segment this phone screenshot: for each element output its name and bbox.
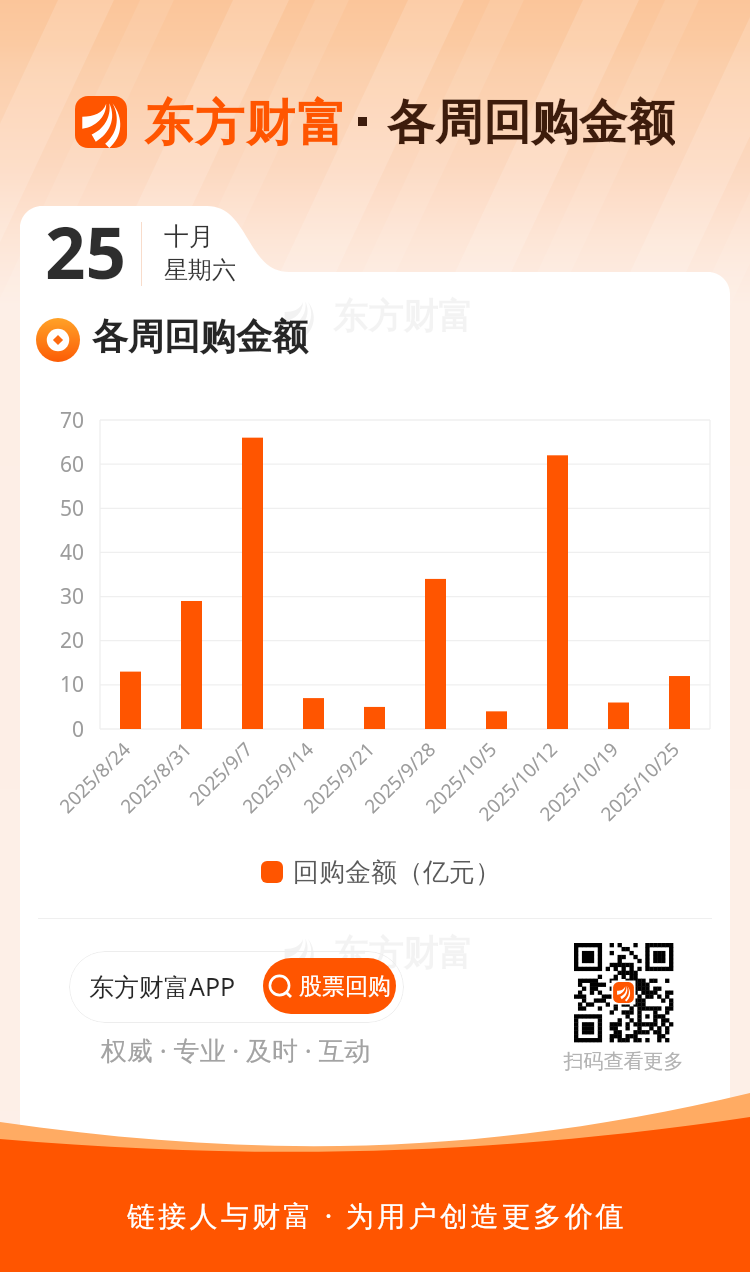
staticText: 扫码查看更多	[554, 1049, 693, 1074]
staticText: 2025/9/14	[237, 736, 319, 819]
staticText: 50	[36, 494, 84, 523]
staticText: 各周回购金额	[387, 93, 675, 147]
staticText: 股票回购	[299, 972, 391, 1001]
staticText: 0	[36, 715, 84, 744]
staticText: 十月	[164, 221, 214, 252]
staticText: 2025/9/7	[183, 736, 258, 811]
staticText: 链接人与财富 · 为用户创造更多价值	[2, 1196, 750, 1234]
staticText: 权威 · 专业 · 及时 · 互动	[101, 1032, 371, 1068]
staticText: 2025/9/21	[298, 736, 380, 819]
button[interactable]: QR code, scan for more	[574, 943, 673, 1042]
staticText: 2025/8/24	[54, 736, 136, 819]
staticText: 2025/8/31	[115, 736, 197, 819]
staticText: 2025/9/28	[359, 736, 441, 819]
staticText: 40	[36, 538, 84, 567]
staticText: 70	[36, 406, 84, 435]
staticText: 回购金额（亿元）	[293, 856, 501, 889]
staticText: 2025/10/25	[595, 736, 685, 826]
staticText: 60	[36, 450, 84, 479]
staticText: 东方财富	[143, 93, 347, 147]
staticText: 各周回购金额	[92, 314, 308, 359]
staticText: 25	[45, 203, 127, 300]
staticText: 东方财富	[333, 931, 473, 975]
staticText: 东方财富APP	[89, 969, 236, 1003]
staticText: 2025/10/5	[420, 736, 502, 819]
staticText: 2025/10/19	[534, 736, 624, 826]
staticText: 20	[36, 626, 84, 655]
staticText: 2025/10/12	[473, 736, 563, 826]
staticText: 10	[36, 670, 84, 699]
staticText: 30	[36, 582, 84, 611]
button[interactable]: 东方财富APP	[69, 951, 404, 1023]
button[interactable]: 股票回购	[263, 958, 396, 1014]
staticText: 星期六	[164, 255, 236, 285]
staticText: 东方财富	[333, 294, 473, 338]
